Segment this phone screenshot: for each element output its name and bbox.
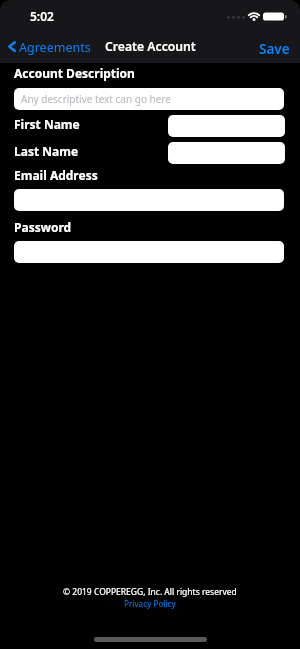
staticText: Account Description [14, 65, 135, 81]
staticText: Save [259, 40, 290, 58]
button[interactable] [14, 189, 284, 211]
button[interactable]: Any descriptive text can go here [14, 88, 284, 110]
staticText: Any descriptive text can go here [21, 92, 171, 106]
staticText: Privacy Policy [124, 598, 176, 609]
button[interactable]: Privacy Policy [124, 598, 176, 609]
staticText: Agreements [19, 39, 91, 56]
button[interactable] [168, 115, 285, 137]
button[interactable] [14, 241, 284, 263]
staticText: © 2019 COPPEREGG, Inc. All rights reserv… [63, 586, 237, 598]
staticText: 5:02 [30, 8, 54, 24]
staticText: Password [14, 219, 72, 235]
button[interactable] [168, 142, 285, 164]
staticText: Email Address [14, 167, 98, 183]
button[interactable]: Save [253, 36, 295, 60]
button[interactable]: Agreements [4, 36, 94, 60]
staticText: Create Account [105, 38, 196, 55]
staticText: First Name [14, 116, 80, 132]
staticText: Last Name [14, 143, 79, 159]
